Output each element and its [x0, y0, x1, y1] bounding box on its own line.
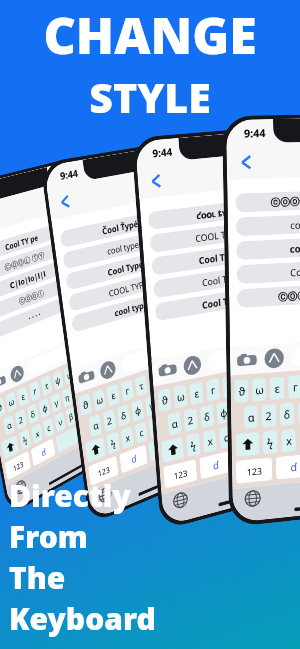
button[interactable]: ⒸⓄⓄⓁ ⓉⓎ	[0, 238, 73, 285]
button[interactable]: Čool Ťypé	[59, 207, 177, 248]
button[interactable]: δ	[27, 403, 39, 425]
button[interactable]: σ	[284, 362, 298, 385]
button[interactable]	[161, 437, 184, 463]
button[interactable]: ϟ	[186, 433, 201, 457]
button[interactable]: τ	[134, 374, 148, 397]
button[interactable]: ɗ	[199, 451, 231, 479]
button[interactable]: г	[121, 379, 134, 402]
button[interactable]: 2	[103, 409, 116, 432]
button[interactable]: x	[281, 429, 296, 453]
button[interactable]: ɗ	[276, 454, 300, 480]
button[interactable]: σ	[85, 355, 96, 375]
button[interactable]: π	[96, 350, 106, 370]
button[interactable]: ϑ	[157, 388, 172, 412]
button[interactable]	[237, 350, 257, 371]
button[interactable]: λ	[197, 376, 209, 398]
button[interactable]: γ	[232, 397, 246, 421]
button[interactable]: ε	[106, 384, 120, 407]
button[interactable]	[147, 172, 165, 191]
button[interactable]: ϳ	[171, 385, 184, 407]
button[interactable]: c	[135, 421, 148, 444]
button[interactable]: ι	[269, 365, 283, 388]
button[interactable]: 123	[4, 451, 31, 481]
button[interactable]: μ	[281, 411, 295, 434]
button[interactable]: ɗ	[31, 438, 56, 467]
button[interactable]	[183, 354, 202, 376]
button[interactable]: Ⅽ|Ⅰo|Ⅰo|Ⅰ|Ⅰ	[0, 256, 76, 305]
button[interactable]: ϕ	[216, 401, 230, 425]
button[interactable]: ϟ	[19, 429, 31, 451]
button[interactable]	[14, 478, 27, 497]
button[interactable]: x	[31, 423, 43, 445]
button[interactable]: υ	[63, 365, 75, 385]
button[interactable]: ϕ	[131, 399, 144, 422]
button[interactable]: ν	[148, 416, 161, 439]
button[interactable]	[57, 192, 74, 211]
button[interactable]	[296, 406, 300, 431]
button[interactable]: τ	[40, 375, 53, 396]
button[interactable]: ω	[5, 391, 17, 413]
button[interactable]: α	[244, 405, 258, 429]
button[interactable]: α	[89, 414, 102, 437]
button[interactable]: Cool TY pe	[0, 220, 70, 266]
button[interactable]: υ	[162, 366, 174, 388]
button[interactable]	[77, 366, 95, 388]
button[interactable]: Cool type	[236, 258, 300, 284]
button[interactable]	[99, 359, 117, 381]
button[interactable]: Cool Type	[154, 282, 287, 322]
button[interactable]: ε	[270, 376, 284, 400]
button[interactable]	[235, 432, 259, 457]
button[interactable]: ƈօօʟ ȶʏքɛ	[148, 196, 281, 230]
button[interactable]: κ	[279, 387, 292, 411]
button[interactable]	[97, 388, 112, 410]
button[interactable]: x	[203, 429, 217, 453]
button[interactable]: ε	[17, 386, 29, 407]
button[interactable]: δ	[117, 404, 130, 427]
button[interactable]	[264, 348, 284, 369]
button[interactable]: υ	[254, 368, 267, 392]
button[interactable]: cool type	[62, 226, 179, 270]
button[interactable]: δ	[200, 404, 214, 428]
button[interactable]: μ	[188, 402, 200, 424]
button[interactable]: · · · ·	[0, 291, 81, 343]
button[interactable]: ν	[54, 411, 66, 433]
button[interactable]: β	[251, 418, 264, 442]
button[interactable]: ⓒⓞⓞⓛ	[0, 273, 79, 324]
button[interactable]	[1, 435, 19, 460]
button[interactable]: ψ	[52, 370, 64, 391]
button[interactable]: κ	[83, 377, 94, 397]
button[interactable]: γ	[50, 392, 62, 413]
button[interactable]: τ	[222, 375, 236, 398]
button[interactable]: ψ	[238, 371, 252, 395]
button[interactable]: π	[299, 359, 300, 382]
button[interactable]: 123	[163, 459, 197, 488]
button[interactable]: ι	[175, 361, 187, 383]
button[interactable]: Cool Type	[153, 261, 286, 299]
button[interactable]: cool type	[236, 212, 300, 236]
button[interactable]: β	[65, 406, 77, 427]
button[interactable]: λ	[94, 372, 105, 392]
button[interactable]	[158, 359, 177, 381]
button[interactable]: ϳ	[72, 382, 84, 402]
button[interactable]	[85, 436, 106, 463]
button[interactable]: Cool Type	[65, 246, 182, 291]
button[interactable]: ϑ	[78, 393, 92, 416]
button[interactable]: σ	[188, 357, 200, 379]
button[interactable]: c	[43, 417, 55, 439]
button[interactable]: г	[206, 378, 220, 402]
button[interactable]: γ	[145, 394, 158, 417]
button[interactable]: ϕ	[38, 397, 51, 419]
button[interactable]: 123	[236, 457, 272, 484]
button[interactable]: 123	[88, 455, 119, 486]
button[interactable]	[237, 153, 255, 171]
button[interactable]	[148, 416, 220, 462]
button[interactable]: ω	[252, 378, 266, 402]
button[interactable]: ϟ	[263, 430, 278, 454]
button[interactable]: β	[162, 411, 174, 434]
button[interactable]: η	[61, 387, 73, 408]
button[interactable]: ϳ	[264, 391, 277, 414]
button[interactable]: η	[266, 415, 280, 438]
button[interactable]: ϑ	[0, 396, 5, 418]
button[interactable]: cool type	[71, 285, 186, 333]
button[interactable]: η	[76, 401, 87, 421]
